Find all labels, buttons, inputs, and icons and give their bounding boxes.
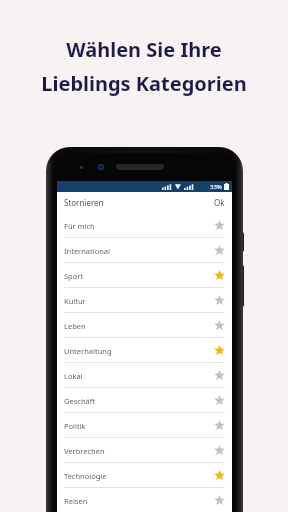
button[interactable]: Unterhaltung (57, 338, 232, 363)
staticText: Technologie (64, 471, 107, 481)
staticText: Unterhaltung (64, 346, 112, 356)
other: Favorit Kultur (214, 295, 225, 306)
button[interactable]: Kultur (57, 288, 232, 313)
button[interactable]: Lokal (57, 363, 232, 388)
other: Favorit Verbrechen (214, 445, 225, 456)
staticText: Lieblings Kategorien (41, 70, 247, 97)
other: Favorit Reisen (214, 495, 225, 506)
staticText: Politik (64, 421, 86, 431)
button[interactable]: Politik (57, 413, 232, 438)
button[interactable]: Für mich (57, 213, 232, 238)
other: Favorit Geschäft (214, 395, 225, 406)
staticText: Stornieren (64, 197, 104, 208)
button[interactable]: Leben (57, 313, 232, 338)
staticText: Sport (64, 271, 84, 281)
staticText: Kultur (64, 296, 86, 306)
button[interactable]: Technologie (57, 463, 232, 488)
staticText: Für mich (64, 221, 95, 231)
other: Favorit International (214, 245, 225, 256)
button[interactable]: International (57, 238, 232, 263)
button[interactable]: Reisen (57, 488, 232, 512)
other: Favorit Sport (214, 270, 225, 281)
other: Favorit Für mich (214, 220, 225, 231)
staticText: 33% (210, 183, 222, 191)
staticText: Geschäft (64, 396, 96, 406)
staticText: International (64, 246, 111, 256)
staticText: Leben (64, 321, 86, 331)
staticText: Ok (214, 197, 225, 208)
other: Favorit Technologie (214, 470, 225, 481)
button[interactable]: Verbrechen (57, 438, 232, 463)
staticText: Reisen (64, 496, 88, 506)
other: Favorit Unterhaltung (214, 345, 225, 356)
button[interactable]: Stornieren (63, 193, 105, 212)
button[interactable]: Geschäft (57, 388, 232, 413)
other: Favorit Politik (214, 420, 225, 431)
button[interactable]: Sport (57, 263, 232, 288)
other: Favorit Leben (214, 320, 225, 331)
staticText: Verbrechen (64, 446, 105, 456)
button[interactable]: Ok (213, 193, 226, 212)
other: Favorit Lokal (214, 370, 225, 381)
staticText: Lokal (64, 371, 83, 381)
staticText: Wählen Sie Ihre (66, 36, 222, 63)
